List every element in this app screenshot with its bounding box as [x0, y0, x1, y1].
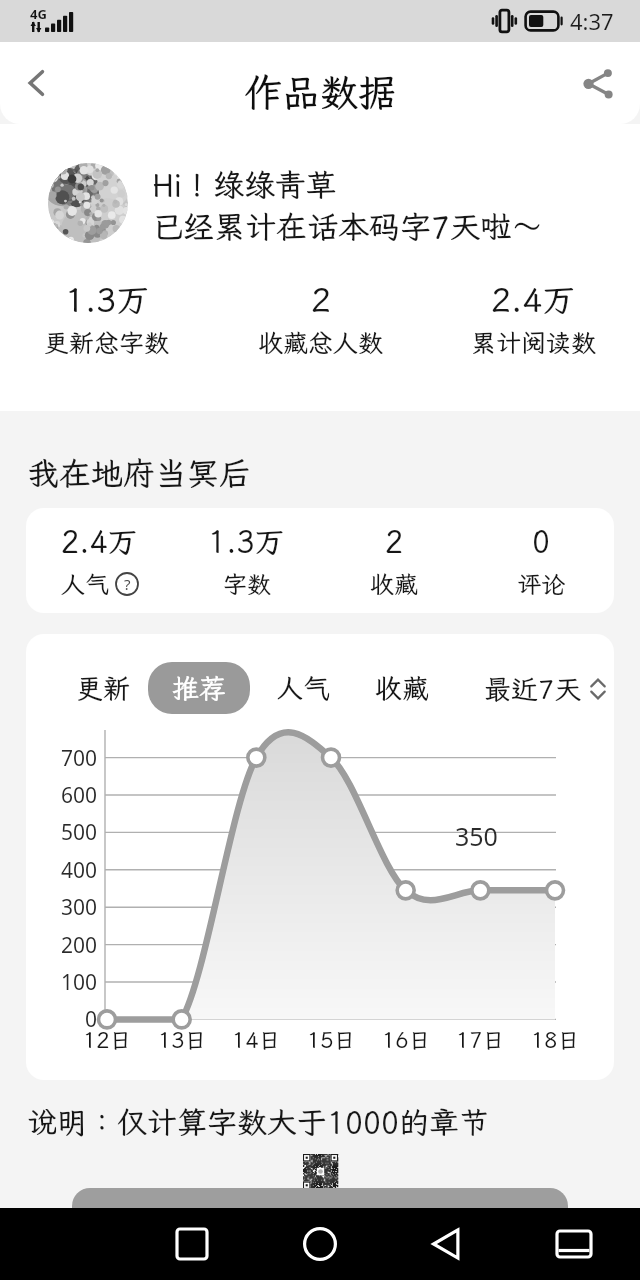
button[interactable]: 人气 — [276, 662, 330, 714]
staticText: 17日 — [456, 1025, 505, 1054]
button[interactable] — [72, 1188, 568, 1218]
button[interactable]: Recents — [160, 1212, 224, 1276]
staticText: 累计阅读数 — [471, 326, 597, 359]
staticText: 更新总字数 — [44, 326, 170, 359]
staticText: 0 — [85, 1005, 98, 1034]
staticText: 推荐 — [172, 670, 226, 706]
staticText: 700 — [61, 744, 98, 773]
staticText: 1.3万 — [208, 521, 285, 561]
button[interactable]: Back — [415, 1212, 479, 1276]
button[interactable]: 2.4万 — [26, 508, 614, 613]
staticText: 评论 — [517, 568, 565, 600]
staticText: 16日 — [382, 1025, 431, 1054]
staticText: 2.4万 — [61, 521, 138, 561]
staticText: 2 — [311, 277, 331, 320]
staticText: 12日 — [83, 1025, 132, 1054]
staticText: 2 — [385, 521, 403, 561]
staticText: Hi！绿绿青草 — [152, 164, 337, 205]
staticText: 4:37 — [570, 6, 614, 36]
staticText: 0 — [532, 521, 550, 561]
staticText: 最近7天 — [484, 671, 582, 707]
button[interactable]: Back — [8, 54, 66, 112]
staticText: 2.4万 — [491, 277, 576, 320]
staticText: 字数 — [223, 568, 271, 600]
staticText: 15日 — [307, 1025, 356, 1054]
staticText: 4G — [30, 5, 47, 23]
button[interactable]: Split screen — [542, 1212, 606, 1276]
button[interactable]: 1.3万 — [0, 277, 214, 359]
button[interactable]: 2.4万 — [427, 277, 640, 359]
staticText: 300 — [61, 893, 98, 922]
staticText: 人气 — [276, 670, 330, 706]
button[interactable]: 推荐 — [148, 662, 250, 714]
button[interactable]: 收藏 — [375, 662, 429, 714]
staticText: ? — [124, 574, 131, 594]
staticText: 收藏总人数 — [258, 326, 384, 359]
staticText: 200 — [61, 931, 98, 960]
staticText: 350 — [455, 819, 498, 853]
staticText: 更新 — [76, 670, 130, 706]
staticText: 600 — [61, 781, 98, 810]
staticText: 1.3万 — [65, 277, 150, 320]
staticText: 收藏 — [370, 568, 418, 600]
staticText: 500 — [61, 818, 98, 847]
staticText: 收藏 — [375, 670, 429, 706]
button[interactable]: Home — [288, 1212, 352, 1276]
staticText: 已经累计在话本码字7天啦〜 — [152, 206, 543, 247]
staticText: 我在地府当冥后 — [27, 452, 252, 494]
staticText: 18日 — [531, 1025, 580, 1054]
staticText: 说明：仅计算字数大于1000的章节 — [27, 1102, 489, 1142]
button[interactable]: Share — [570, 55, 626, 111]
button[interactable]: 2 — [214, 277, 427, 359]
staticText: 100 — [61, 968, 98, 997]
button[interactable]: 最近7天 — [478, 665, 612, 713]
staticText: 人气 — [61, 568, 109, 600]
button[interactable]: 更新 — [76, 662, 130, 714]
staticText: 作品数据 — [244, 67, 397, 117]
staticText: 14日 — [232, 1025, 281, 1054]
staticText: 400 — [61, 856, 98, 885]
staticText: 13日 — [158, 1025, 207, 1054]
